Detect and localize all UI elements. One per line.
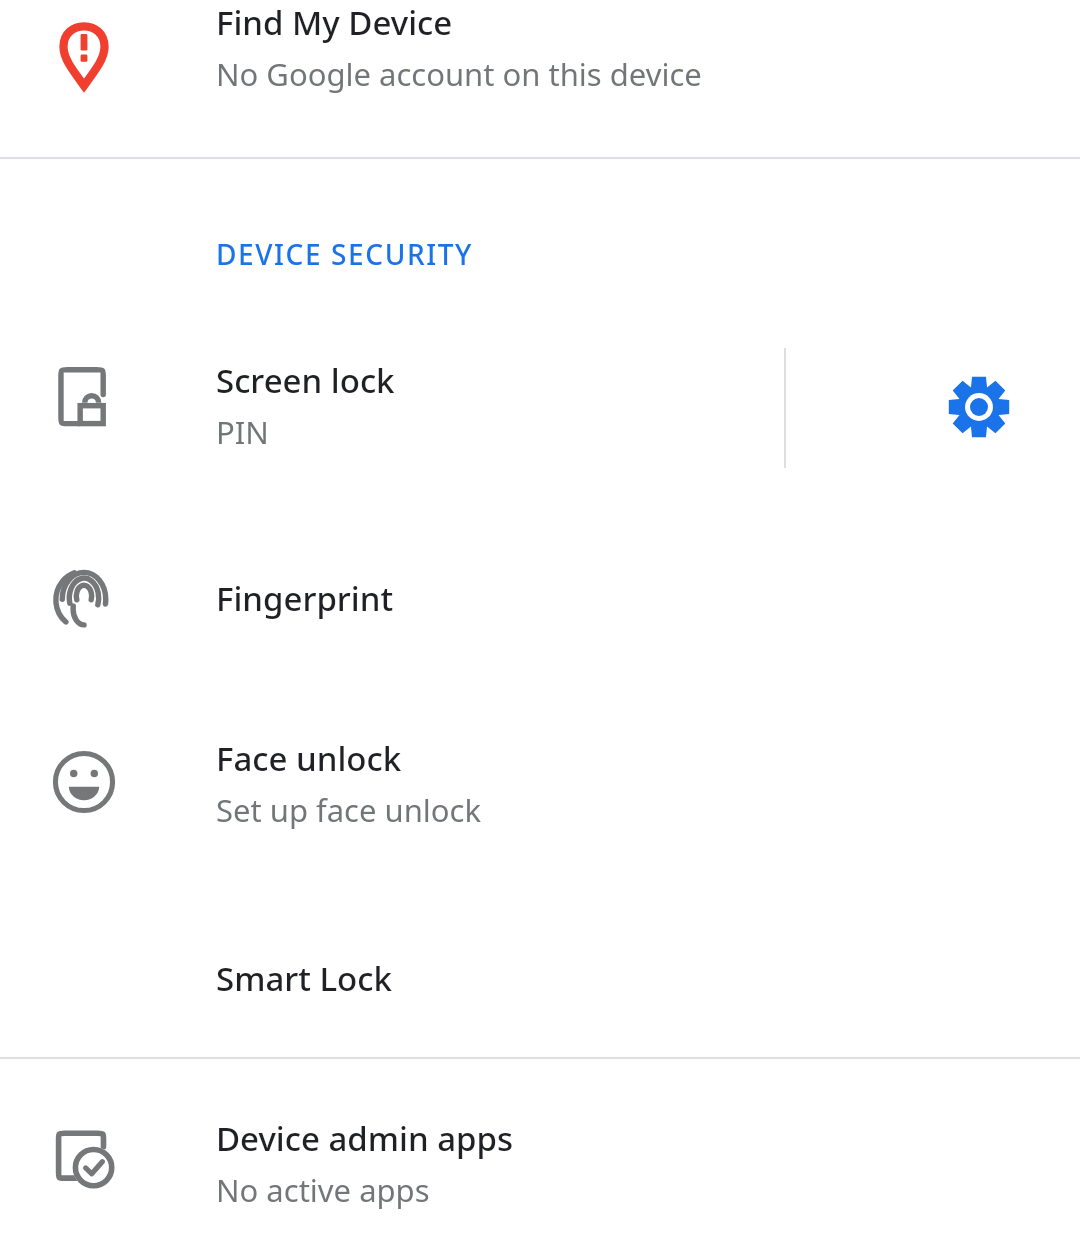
staticText: No Google account on this device: [216, 53, 702, 95]
staticText: Find My Device: [216, 0, 453, 45]
staticText: No active apps: [216, 1169, 430, 1211]
staticText: DEVICE SECURITY: [216, 235, 473, 273]
staticText: Face unlock: [216, 736, 402, 781]
button[interactable]: Device admin apps: [0, 1080, 1080, 1258]
button[interactable]: Find My Device: [0, 0, 1080, 158]
staticText: Fingerprint: [216, 576, 394, 621]
staticText: Device admin apps: [216, 1116, 514, 1161]
staticText: Screen lock: [216, 358, 395, 403]
button[interactable]: Screen lock: [0, 320, 888, 495]
button[interactable]: Fingerprint: [0, 520, 1080, 680]
button[interactable]: Screen lock settings: [890, 320, 1080, 495]
staticText: Set up face unlock: [216, 789, 482, 831]
button[interactable]: Smart Lock: [0, 900, 1080, 1058]
staticText: Smart Lock: [216, 956, 392, 1001]
staticText: PIN: [216, 411, 269, 453]
button[interactable]: Face unlock: [0, 700, 1080, 875]
